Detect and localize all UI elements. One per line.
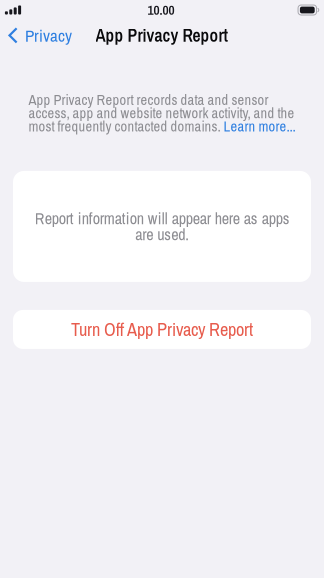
button[interactable]: Privacy	[0, 21, 80, 50]
staticText: Report information will appear here as a…	[34, 211, 289, 242]
staticText: Turn Off App Privacy Report	[71, 317, 253, 342]
button[interactable]: Turn Off App Privacy Report	[0, 310, 324, 349]
staticText: 10.00	[147, 1, 174, 19]
staticText: App Privacy Report	[95, 24, 228, 47]
staticText: App Privacy Report records data and sens…	[28, 93, 295, 133]
staticText: Privacy	[25, 24, 72, 47]
